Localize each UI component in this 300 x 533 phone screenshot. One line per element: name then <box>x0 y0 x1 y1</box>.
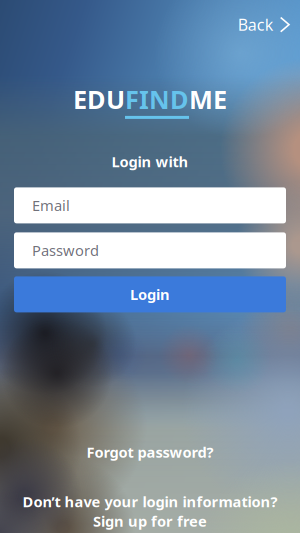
staticText: Back <box>238 14 274 35</box>
button[interactable]: Login <box>14 276 286 312</box>
staticText: Sign up for free <box>93 511 207 531</box>
staticText: Forgot password? <box>86 442 213 462</box>
staticText: Password <box>32 241 99 260</box>
staticText: Login <box>130 285 170 304</box>
button[interactable]: Back <box>220 6 300 43</box>
staticText: EDU <box>73 82 125 116</box>
staticText: FIND <box>125 82 189 116</box>
staticText: Email <box>32 196 70 215</box>
button[interactable]: Forgot password? <box>66 434 233 470</box>
staticText: Login with <box>111 152 188 171</box>
staticText: Don’t have your login information? <box>22 492 277 511</box>
staticText: ME <box>189 82 227 116</box>
button[interactable]: Sign up for free <box>93 511 207 531</box>
